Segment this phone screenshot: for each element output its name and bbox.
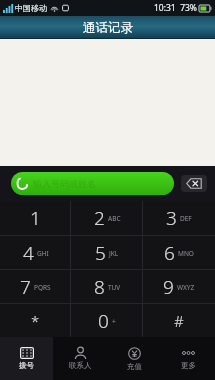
staticText: 7: [20, 274, 31, 300]
staticText: ABC: [108, 214, 121, 223]
button[interactable]: 2: [71, 201, 143, 235]
staticText: 8: [94, 274, 105, 300]
button[interactable]: Delete: [181, 175, 207, 192]
button[interactable]: 联系人: [53, 337, 107, 380]
staticText: 9: [163, 274, 174, 300]
button[interactable]: 0: [71, 304, 143, 337]
staticText: 输入号码或姓名: [33, 178, 96, 189]
button[interactable]: 6: [143, 236, 215, 269]
staticText: 1: [30, 205, 41, 231]
staticText: DEF: [180, 214, 192, 223]
button[interactable]: 充值: [107, 337, 161, 380]
staticText: TUV: [108, 283, 121, 292]
button[interactable]: 3: [143, 201, 215, 235]
button[interactable]: *: [0, 304, 71, 337]
staticText: 联系人: [69, 361, 92, 370]
staticText: 2: [94, 205, 105, 231]
staticText: WXYZ: [177, 283, 195, 292]
staticText: 更多: [181, 361, 196, 370]
staticText: 4: [23, 240, 34, 266]
staticText: +: [112, 317, 116, 326]
staticText: 10:31 73%: [154, 2, 197, 14]
staticText: 通话记录: [83, 20, 133, 36]
staticText: GHI: [37, 249, 49, 258]
staticText: 0: [98, 308, 109, 334]
button[interactable]: 7: [0, 270, 71, 303]
button[interactable]: 拨号: [0, 337, 53, 380]
staticText: MNO: [178, 249, 194, 258]
staticText: 3: [166, 205, 177, 231]
staticText: 中国移动: [15, 3, 47, 13]
staticText: JKL: [109, 249, 119, 258]
button[interactable]: 输入号码或姓名: [11, 172, 174, 195]
button[interactable]: 4: [0, 236, 71, 269]
staticText: 充值: [127, 362, 142, 371]
staticText: 5: [95, 240, 106, 266]
button[interactable]: 5: [71, 236, 143, 269]
staticText: 拨号: [19, 361, 34, 370]
button[interactable]: 1: [0, 201, 71, 235]
button[interactable]: 9: [143, 270, 215, 303]
staticText: PQRS: [34, 283, 51, 292]
staticText: *: [31, 311, 40, 331]
button[interactable]: 更多: [161, 337, 215, 380]
button[interactable]: #: [143, 304, 215, 337]
staticText: #: [174, 311, 184, 331]
button[interactable]: 8: [71, 270, 143, 303]
staticText: 6: [164, 240, 175, 266]
